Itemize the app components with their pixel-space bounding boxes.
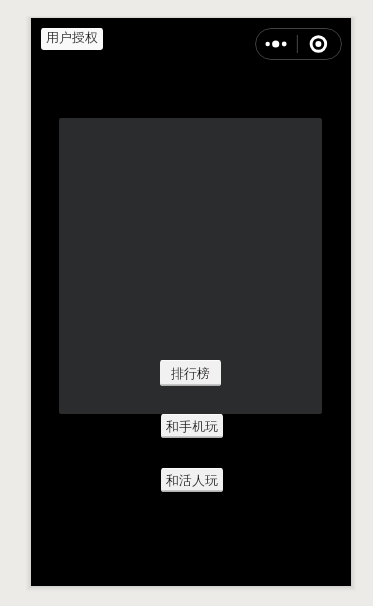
staticText: 用户授权	[46, 29, 98, 45]
staticText: 和活人玩	[166, 472, 218, 488]
button[interactable]: More options	[255, 28, 298, 60]
button[interactable]: Close mini program	[298, 28, 342, 60]
button[interactable]: 用户授权	[41, 28, 103, 50]
staticText: 和手机玩	[166, 418, 218, 434]
button[interactable]: 排行榜	[160, 360, 221, 386]
button[interactable]: 和手机玩	[161, 414, 223, 438]
staticText: 排行榜	[171, 365, 210, 381]
button[interactable]: 和活人玩	[161, 468, 223, 492]
